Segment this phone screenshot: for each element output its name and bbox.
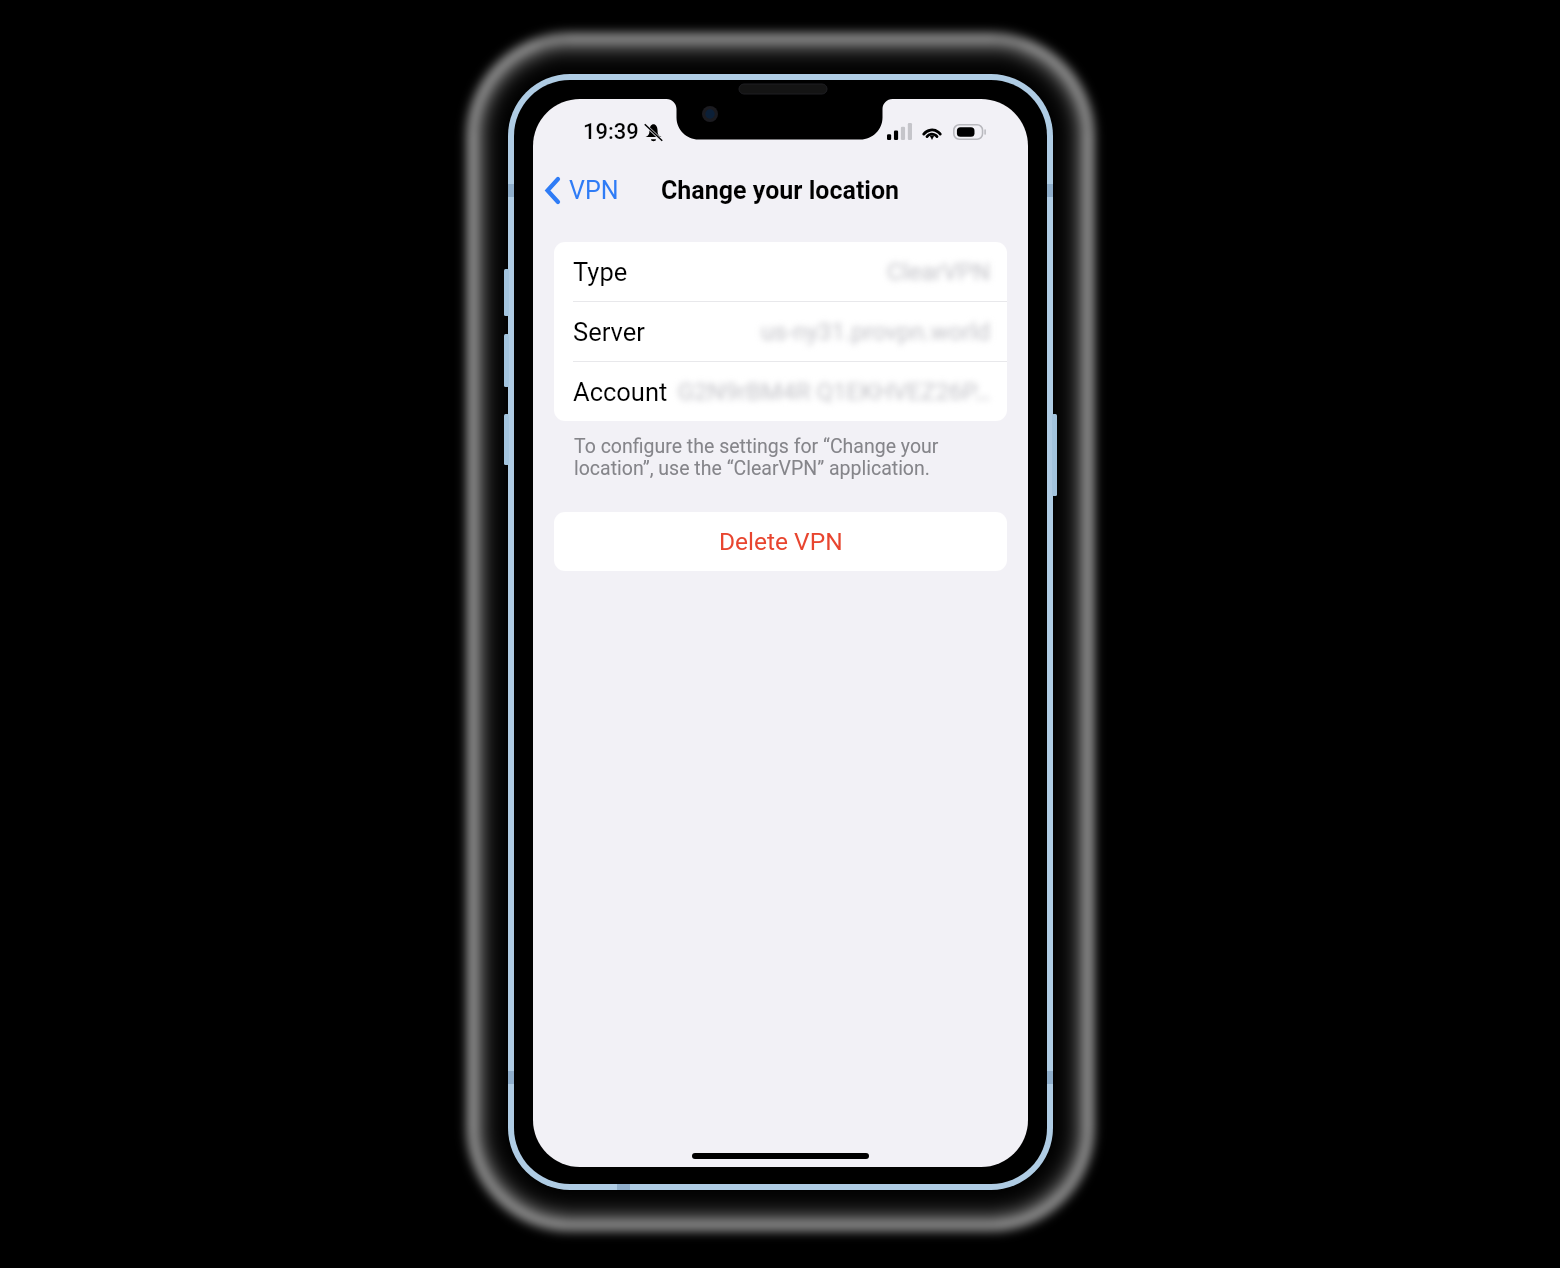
other: Back (545, 177, 560, 204)
button[interactable]: Account (554, 362, 1007, 421)
staticText: 19:39 (583, 119, 639, 145)
other: Silent mode (644, 123, 663, 141)
staticText: VPN (569, 176, 619, 205)
button[interactable]: Server (554, 302, 1007, 361)
other: Cellular signal (887, 123, 912, 140)
staticText: us-ny31.provpn.world (761, 318, 990, 346)
button[interactable]: Type (554, 242, 1007, 301)
staticText: Account (573, 377, 668, 407)
staticText: Type (573, 257, 628, 287)
other: Battery (953, 124, 986, 140)
other: Wi-Fi (921, 124, 943, 140)
staticText: To configure the settings for “Change yo… (574, 435, 939, 480)
button[interactable]: Back (537, 170, 629, 211)
staticText: Delete VPN (719, 527, 843, 556)
staticText: Server (573, 317, 645, 347)
staticText: ClearVPN (887, 258, 990, 286)
button[interactable]: Delete VPN (554, 512, 1007, 571)
staticText: G2N9rBM4R Q1EKHVEZ26P… (677, 378, 990, 406)
staticText: Change your location (661, 176, 900, 205)
